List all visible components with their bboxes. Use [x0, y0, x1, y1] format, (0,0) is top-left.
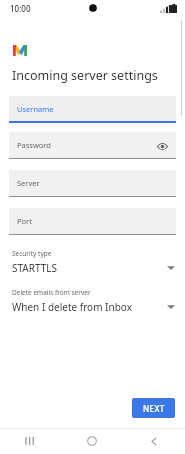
staticText: Incoming server settings — [12, 67, 158, 84]
button[interactable]: Username — [9, 96, 176, 123]
staticText: Port — [17, 216, 32, 226]
button[interactable]: Security type — [0, 249, 185, 275]
staticText: When I delete from Inbox — [12, 300, 167, 314]
staticText: Security type — [12, 249, 52, 258]
staticText: Password — [17, 140, 51, 150]
staticText: Delete emails from server — [12, 288, 91, 297]
button[interactable]: Port — [9, 208, 176, 235]
button[interactable]: NEXT — [132, 398, 175, 418]
button[interactable]: Back — [123, 428, 185, 454]
staticText: 10:00 — [10, 3, 31, 14]
staticText: Username — [17, 104, 54, 114]
staticText: Server — [17, 178, 40, 188]
button[interactable]: Recent apps — [0, 428, 61, 454]
button[interactable]: Home — [61, 428, 123, 454]
button[interactable]: Password — [9, 132, 176, 159]
staticText: NEXT — [143, 403, 165, 414]
button[interactable]: Server — [9, 170, 176, 197]
staticText: STARTTLS — [12, 261, 167, 275]
button[interactable]: Show password — [156, 140, 168, 152]
button[interactable]: Delete emails from server — [0, 288, 185, 314]
